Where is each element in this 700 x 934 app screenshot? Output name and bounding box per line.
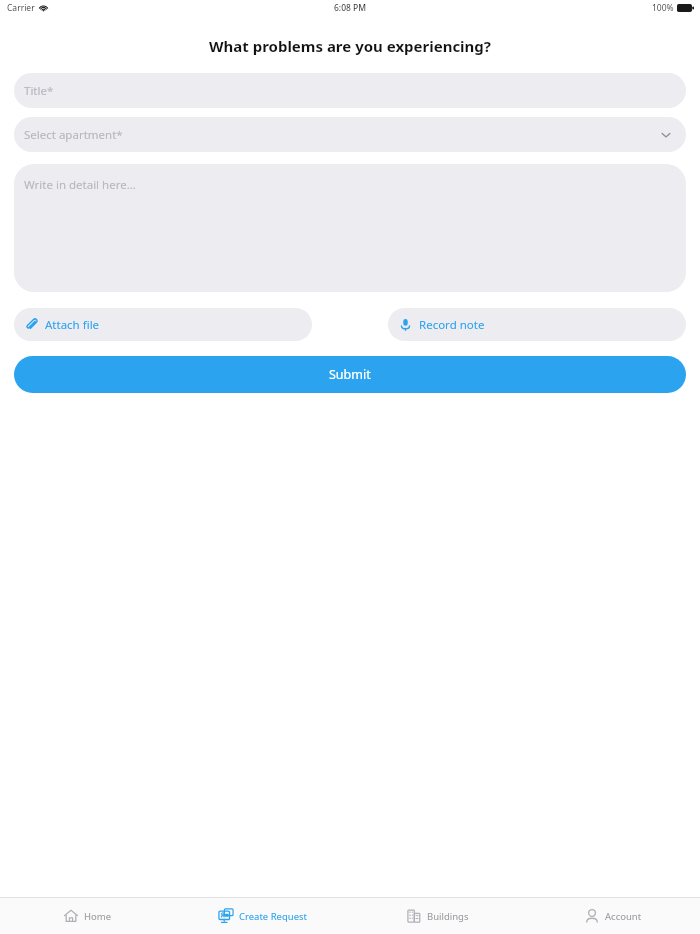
staticText: Account: [605, 910, 642, 923]
staticText: Home: [84, 910, 112, 923]
button[interactable]: Buildings: [350, 898, 525, 934]
button[interactable]: Create Request: [175, 898, 350, 934]
staticText: 100%: [652, 2, 674, 14]
staticText: Create Request: [239, 910, 308, 923]
staticText: What problems are you experiencing?: [0, 36, 700, 56]
button[interactable]: Home: [0, 898, 175, 934]
staticText: Record note: [419, 317, 485, 333]
staticText: Title*: [24, 83, 54, 99]
staticText: Buildings: [427, 910, 469, 923]
staticText: Write in detail here...: [24, 177, 136, 193]
button[interactable]: Record note: [388, 308, 686, 341]
button[interactable]: Attach file: [14, 308, 312, 341]
staticText: 6:08 PM: [334, 2, 367, 14]
button[interactable]: Select apartment*: [14, 117, 686, 152]
button[interactable]: Account: [525, 898, 700, 934]
button[interactable]: Title*: [14, 73, 686, 108]
staticText: Carrier: [7, 2, 35, 14]
staticText: Submit: [329, 366, 371, 383]
staticText: Select apartment*: [24, 127, 123, 143]
staticText: Attach file: [45, 317, 100, 333]
button[interactable]: Submit: [14, 356, 686, 393]
